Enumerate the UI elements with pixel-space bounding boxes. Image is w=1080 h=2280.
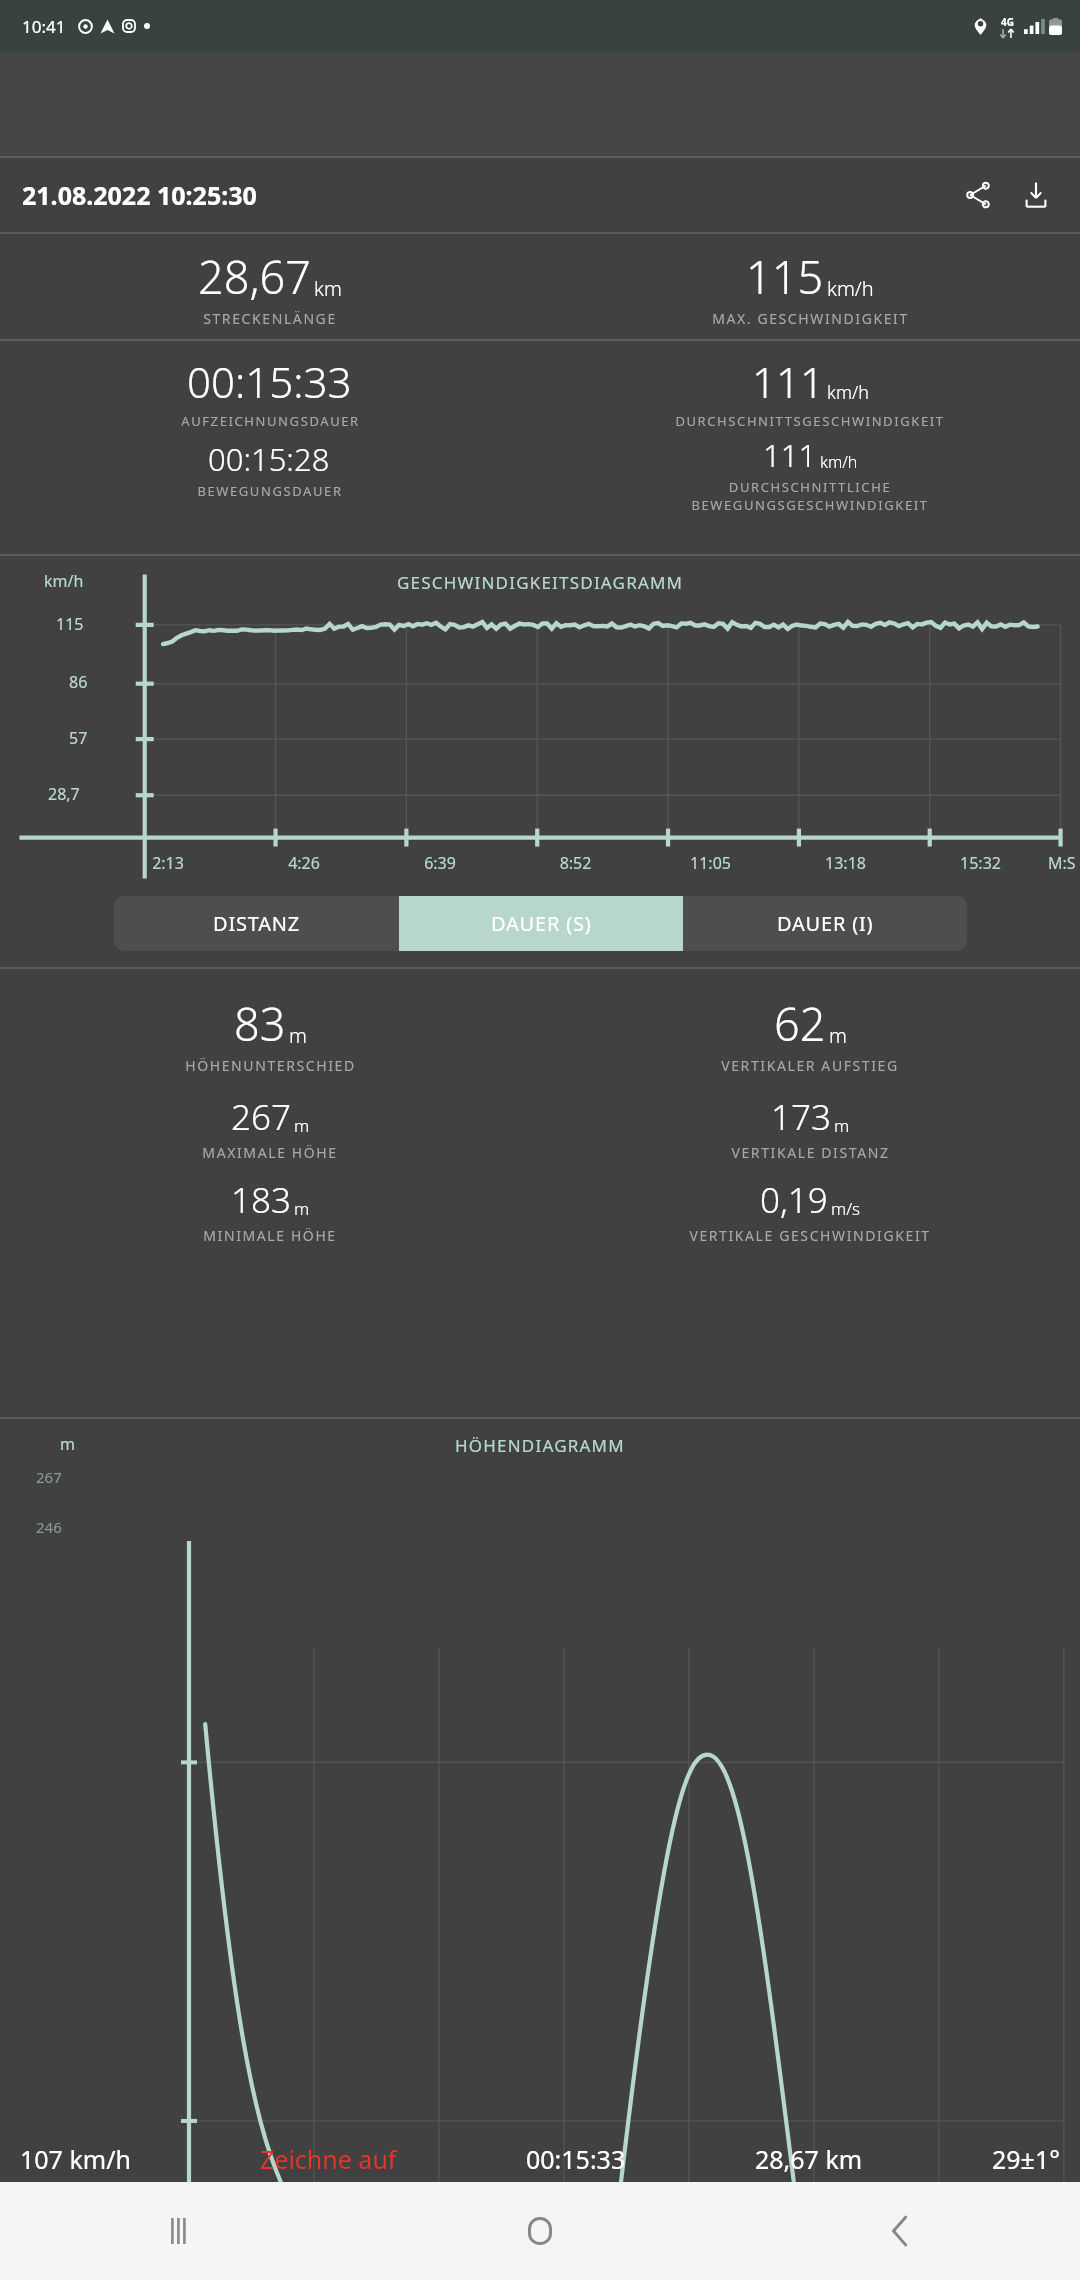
staticText: 246 xyxy=(36,1517,62,1537)
staticText: 267 xyxy=(231,1093,291,1141)
staticText: 8:52 xyxy=(508,852,643,874)
staticText: DISTANZ xyxy=(213,910,301,937)
staticText: km xyxy=(314,275,342,302)
staticText: m xyxy=(834,1114,850,1137)
staticText: 15:32 xyxy=(913,852,1048,874)
staticText: m xyxy=(294,1114,310,1137)
staticText: 107 km/h xyxy=(20,2142,131,2176)
staticText: STRECKENLÄNGE xyxy=(203,309,337,328)
staticText: km/h xyxy=(820,451,858,473)
button[interactable]: DAUER (S) xyxy=(399,896,683,951)
button[interactable]: Home xyxy=(360,2182,720,2280)
staticText: 4:26 xyxy=(236,852,372,874)
staticText: km/h xyxy=(827,380,869,405)
staticText: 28,67 km xyxy=(755,2142,863,2176)
staticText: 28,7 xyxy=(48,783,80,805)
button[interactable]: DISTANZ xyxy=(114,896,399,951)
staticText: m xyxy=(289,1022,307,1049)
button[interactable]: Download xyxy=(1012,171,1060,219)
staticText: VERTIKALE DISTANZ xyxy=(731,1143,890,1162)
staticText: Zeichne auf xyxy=(260,2142,397,2176)
staticText: MAXIMALE HÖHE xyxy=(202,1143,338,1162)
staticText: 00:15:33 xyxy=(526,2142,626,2176)
button[interactable]: Share xyxy=(954,171,1002,219)
staticText: VERTIKALE GESCHWINDIGKEIT xyxy=(689,1226,931,1245)
staticText: DURCHSCHNITTSGESCHWINDIGKEIT xyxy=(675,412,945,430)
staticText: BEWEGUNGSDAUER xyxy=(197,482,343,500)
staticText: 29±1° xyxy=(992,2142,1060,2176)
staticText: 173 xyxy=(771,1093,831,1141)
staticText: 83 xyxy=(234,993,286,1054)
staticText: 11:05 xyxy=(643,852,778,874)
staticText: 267 xyxy=(36,1467,62,1487)
staticText: M:S xyxy=(1048,852,1076,874)
staticText: 00:15:33 xyxy=(187,353,352,410)
staticText: 10:41 xyxy=(22,15,66,38)
staticText: 111 xyxy=(763,434,817,476)
button[interactable]: DAUER (I) xyxy=(683,896,967,951)
staticText: 00:15:28 xyxy=(208,438,330,480)
staticText: 21.08.2022 10:25:30 xyxy=(22,178,257,212)
staticText: 28,67 xyxy=(198,246,311,307)
staticText: 115 xyxy=(746,246,824,307)
staticText: 6:39 xyxy=(372,852,508,874)
button[interactable]: Back xyxy=(720,2182,1080,2280)
staticText: m xyxy=(60,1433,75,1455)
staticText: km/h xyxy=(44,570,84,592)
staticText: 2:13 xyxy=(100,852,236,874)
staticText: 62 xyxy=(774,993,826,1054)
staticText: MINIMALE HÖHE xyxy=(203,1226,337,1245)
staticText: 183 xyxy=(231,1176,291,1224)
staticText: m xyxy=(829,1022,847,1049)
staticText: AUFZEICHNUNGSDAUER xyxy=(181,412,360,430)
staticText: HÖHENUNTERSCHIED xyxy=(185,1056,356,1075)
staticText: 4G xyxy=(1001,15,1014,29)
staticText: km/h xyxy=(827,275,874,302)
staticText: GESCHWINDIGKEITSDIAGRAMM xyxy=(397,571,684,594)
staticText: DURCHSCHNITTLICHE BEWEGUNGSGESCHWINDIGKE… xyxy=(691,478,929,514)
staticText: MAX. GESCHWINDIGKEIT xyxy=(712,309,909,328)
staticText: m/s xyxy=(831,1197,861,1220)
staticText: 111 xyxy=(752,353,824,410)
staticText: 86 xyxy=(69,671,88,693)
staticText: m xyxy=(294,1197,310,1220)
staticText: HÖHENDIAGRAMM xyxy=(455,1434,625,1457)
staticText: VERTIKALER AUFSTIEG xyxy=(721,1056,899,1075)
staticText: 115 xyxy=(56,613,84,635)
staticText: DAUER (I) xyxy=(777,910,874,937)
button[interactable]: Recents xyxy=(0,2182,360,2280)
staticText: DAUER (S) xyxy=(491,910,592,937)
staticText: 13:18 xyxy=(778,852,913,874)
staticText: 57 xyxy=(69,727,88,749)
staticText: 0,19 xyxy=(760,1176,828,1224)
